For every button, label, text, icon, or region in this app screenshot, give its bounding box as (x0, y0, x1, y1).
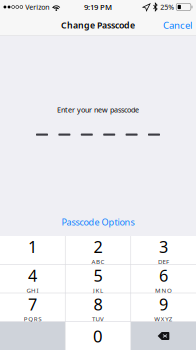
staticText: DEF (158, 258, 169, 266)
button[interactable]: 4 (0, 265, 65, 293)
staticText: TUV (92, 315, 104, 323)
staticText: WXYZ (154, 315, 173, 323)
button[interactable]: 3 (131, 236, 196, 264)
staticText: GHI (26, 286, 38, 294)
button[interactable]: 5 (65, 265, 130, 293)
staticText: 4 (28, 265, 37, 286)
button[interactable]: 8 (65, 293, 130, 321)
staticText: 2 (93, 236, 102, 258)
staticText: PQRS (24, 315, 41, 323)
button[interactable]: Delete (131, 322, 196, 350)
button[interactable]: Passcode Options (53, 213, 142, 231)
staticText: 3 (159, 236, 168, 258)
staticText: 5 (93, 265, 102, 286)
staticText: 6 (159, 265, 168, 286)
staticText: 9 (159, 293, 168, 315)
staticText: 0 (93, 325, 103, 347)
staticText: Cancel (163, 19, 192, 31)
staticText: 25% (160, 2, 174, 12)
staticText: Passcode Options (61, 216, 134, 228)
staticText: Change Passcode (61, 19, 135, 31)
staticText: Verizon (25, 2, 49, 12)
staticText: Enter your new passcode (57, 105, 139, 115)
staticText: ABC (91, 258, 104, 266)
button[interactable]: 7 (0, 293, 65, 321)
staticText: 7 (28, 293, 37, 315)
button[interactable]: 9 (131, 293, 196, 321)
button[interactable]: 6 (131, 265, 196, 293)
button[interactable]: 1 (0, 236, 65, 264)
button[interactable]: Cancel (159, 14, 196, 36)
staticText: 1 (28, 236, 37, 258)
staticText: 9:19 PM (84, 2, 112, 12)
button[interactable]: 2 (65, 236, 130, 264)
staticText: MNO (155, 286, 172, 294)
staticText: JKL (93, 286, 103, 294)
button[interactable]: 0 (65, 322, 130, 350)
staticText: 8 (93, 293, 102, 315)
staticText (31, 258, 33, 266)
